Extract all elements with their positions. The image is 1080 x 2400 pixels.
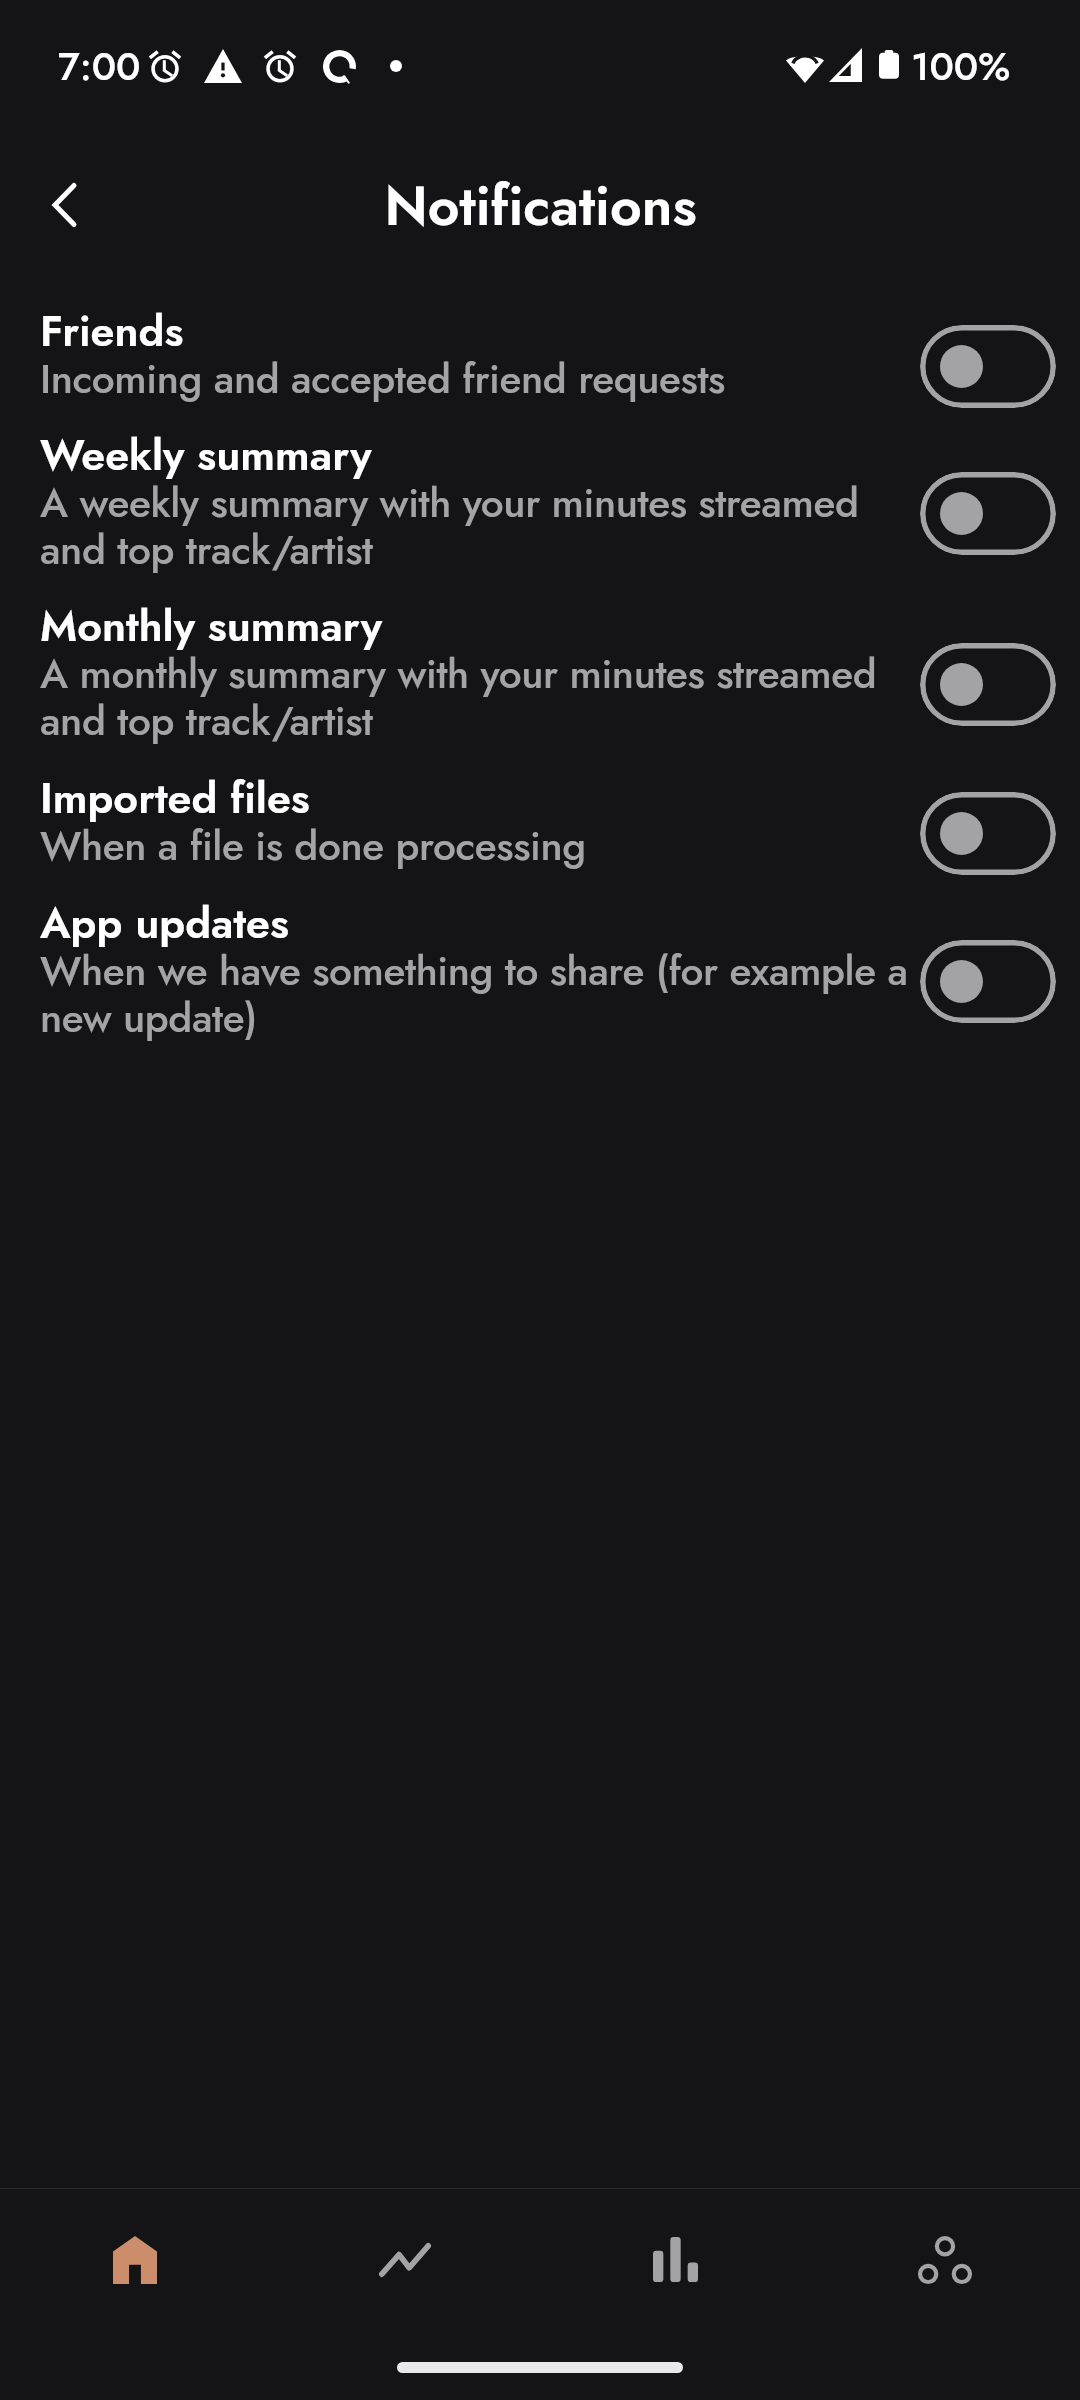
button[interactable]: Back xyxy=(22,162,108,248)
button[interactable] xyxy=(0,408,1080,575)
button[interactable]: Charts xyxy=(540,2189,810,2330)
button[interactable]: Trends xyxy=(270,2189,540,2330)
staticText: Weekly summary A weekly summary with you… xyxy=(40,424,935,579)
staticText: Friends Incoming and accepted friend req… xyxy=(40,300,935,408)
staticText: Imported files When a file is done proce… xyxy=(40,767,935,875)
button[interactable] xyxy=(0,751,1080,871)
button[interactable]: Artists xyxy=(810,2189,1080,2330)
button[interactable] xyxy=(0,284,1080,404)
button[interactable]: Home xyxy=(0,2189,270,2330)
button[interactable]: Toggle xyxy=(920,325,1056,408)
staticText: 100% xyxy=(911,38,1011,94)
staticText: Monthly summary A monthly summary with y… xyxy=(40,595,935,750)
button[interactable]: Toggle xyxy=(920,940,1056,1023)
button[interactable] xyxy=(0,876,1080,1043)
staticText: 7:00 xyxy=(58,38,141,94)
button[interactable]: Toggle xyxy=(920,792,1056,875)
staticText: App updates When we have something to sh… xyxy=(40,892,935,1047)
staticText: Notifications xyxy=(384,166,697,245)
button[interactable] xyxy=(0,579,1080,746)
button[interactable]: Toggle xyxy=(920,472,1056,555)
button[interactable]: Toggle xyxy=(920,643,1056,726)
